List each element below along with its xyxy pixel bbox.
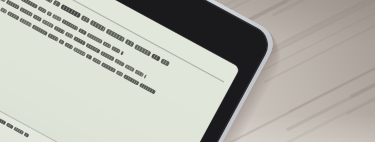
button[interactable]: Photo of a phone on a wooden table showi… <box>0 0 375 142</box>
